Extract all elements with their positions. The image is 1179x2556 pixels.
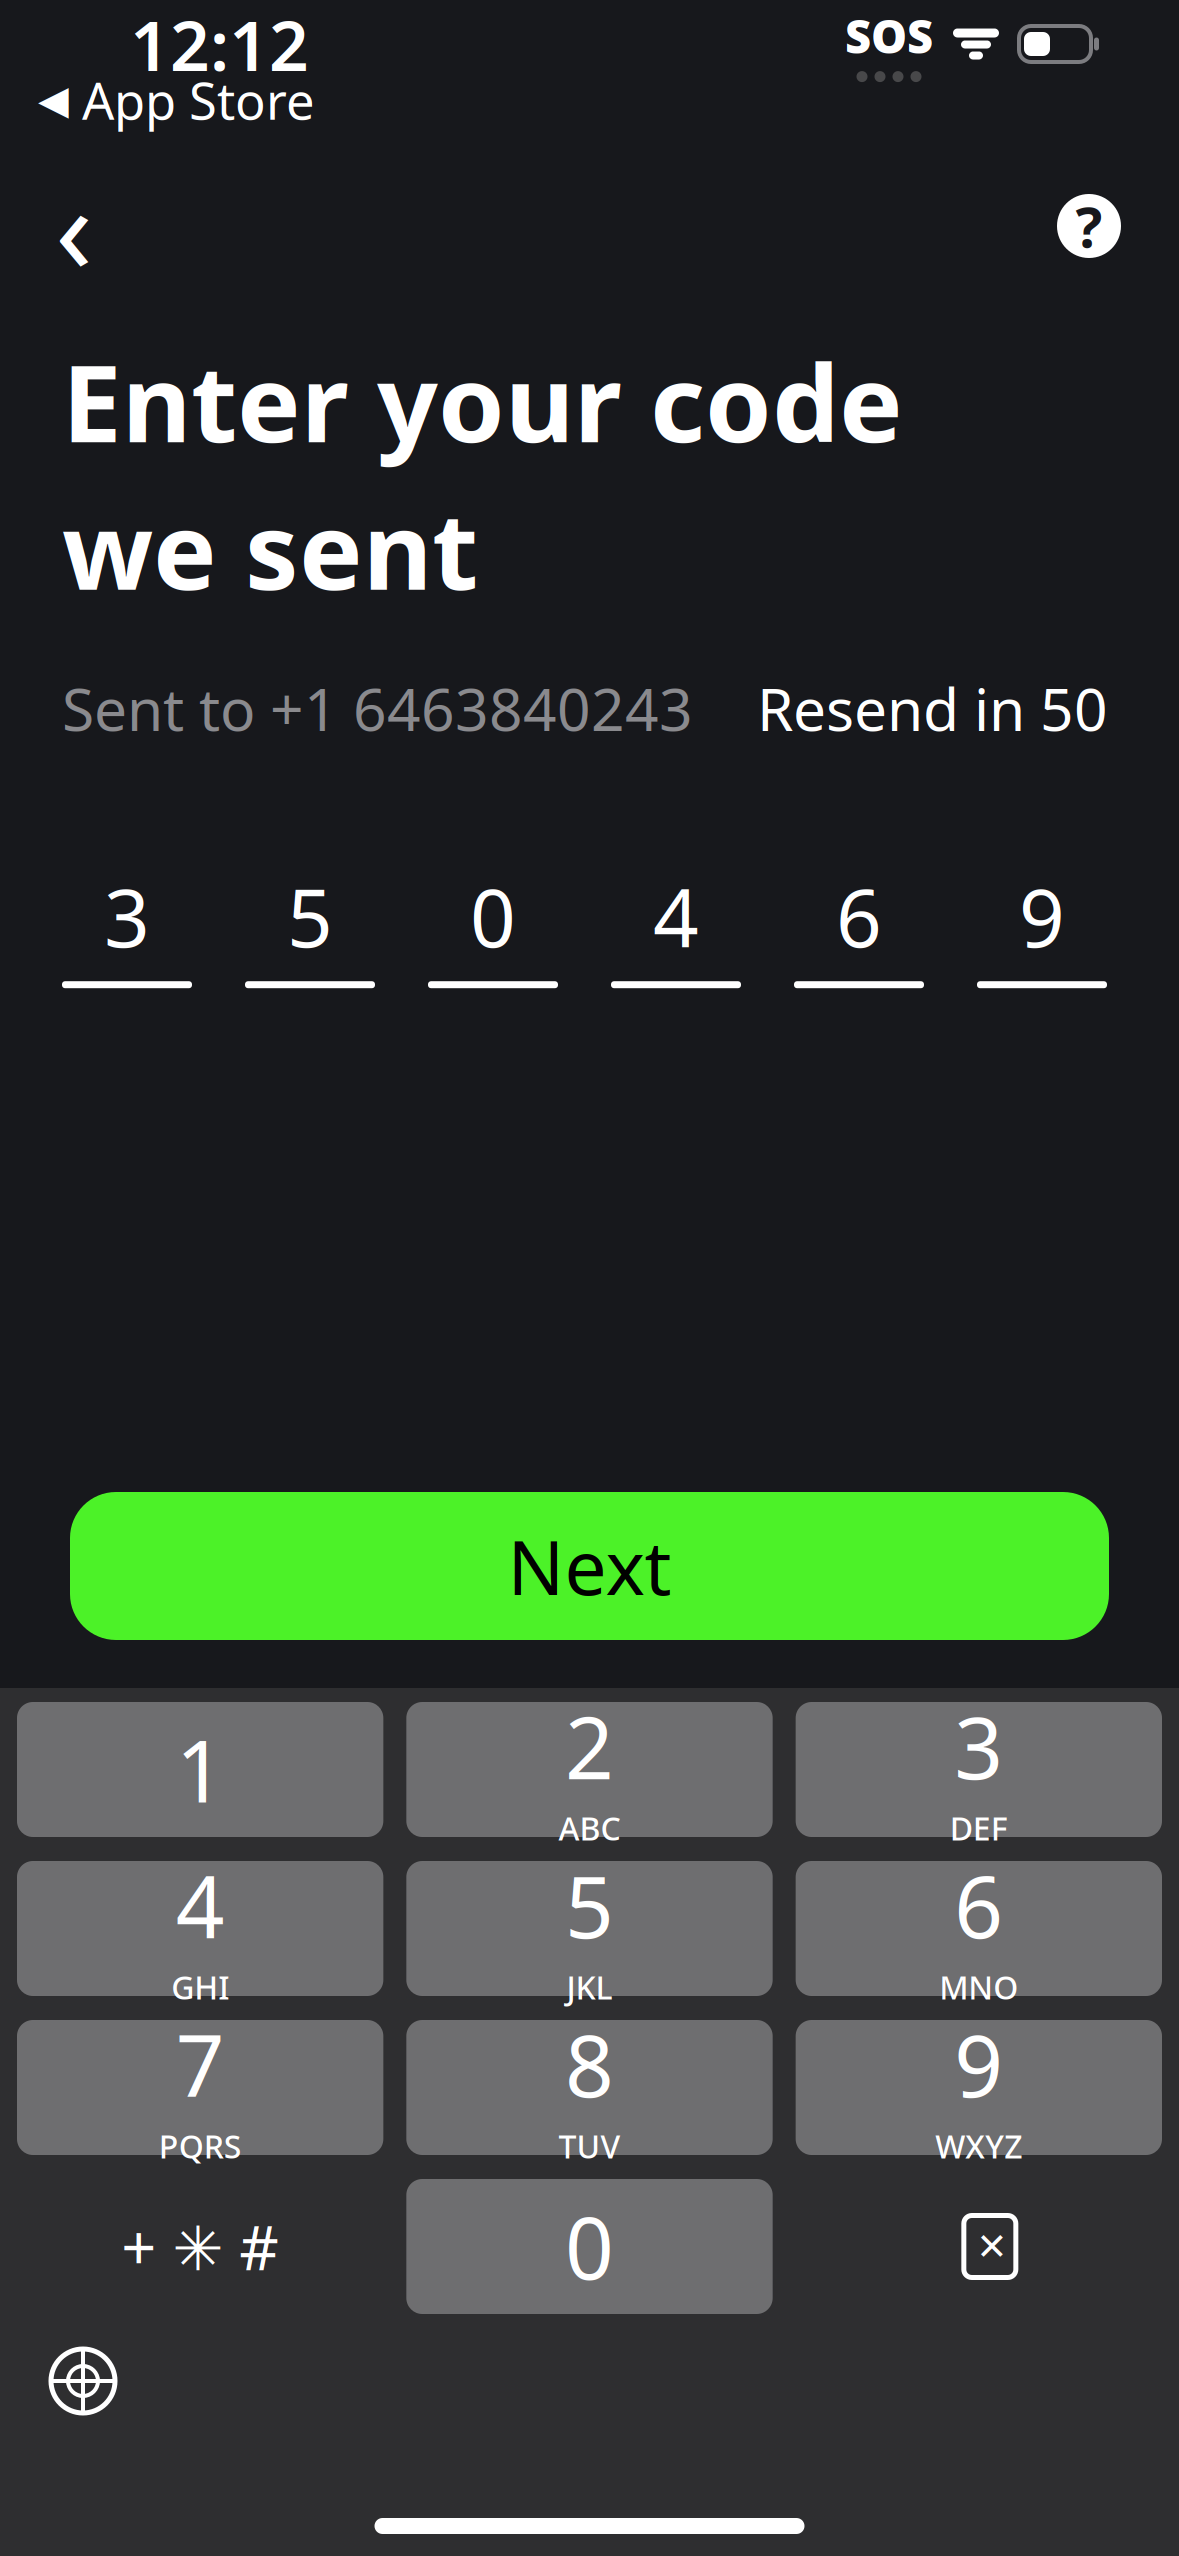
button[interactable]: Symbols (17, 2179, 383, 2314)
staticText: ‹ (55, 145, 93, 307)
staticText: Enter your code (62, 330, 903, 472)
staticText: 7 (176, 2008, 225, 2121)
staticText: 8 (565, 2008, 614, 2121)
button[interactable]: Back (26, 178, 122, 274)
staticText: 2 (565, 1690, 614, 1803)
button[interactable]: 7 (17, 2020, 383, 2155)
button[interactable]: 6 (794, 877, 924, 988)
staticText: MNO (939, 1966, 1018, 2008)
staticText: 4 (653, 863, 699, 969)
button[interactable]: 5 (245, 877, 375, 988)
staticText: TUV (558, 2125, 620, 2167)
button[interactable]: Change keyboard (38, 2336, 128, 2426)
button[interactable]: 4 (611, 877, 741, 988)
button[interactable]: 0 (406, 2179, 773, 2314)
button[interactable]: 9 (796, 2020, 1162, 2155)
button[interactable]: 3 (62, 877, 192, 988)
staticText: 12:12 (130, 0, 309, 90)
button[interactable]: Delete (796, 2179, 1162, 2314)
staticText: + ✳ # (121, 2206, 279, 2287)
staticText: JKL (566, 1966, 612, 2008)
staticText: 9 (1019, 863, 1065, 969)
button[interactable]: Help (1041, 178, 1137, 274)
staticText: App Store (69, 66, 315, 134)
staticText: PQRS (159, 2125, 242, 2167)
staticText: GHI (171, 1966, 229, 2008)
staticText: 9 (954, 2008, 1003, 2121)
staticText: 1 (176, 1713, 225, 1826)
button[interactable]: 9 (977, 877, 1107, 988)
button[interactable]: 5 (406, 1861, 773, 1996)
staticText: 0 (565, 2190, 614, 2303)
staticText: 3 (954, 1690, 1003, 1803)
staticText: 5 (565, 1849, 614, 1962)
staticText: 4 (176, 1849, 225, 1962)
button[interactable]: Next (70, 1492, 1109, 1640)
staticText: we sent (62, 478, 478, 619)
staticText: Next (507, 1516, 671, 1616)
staticText: ? (1075, 189, 1102, 263)
staticText: ✕ (976, 2225, 1007, 2268)
staticText: SOS (845, 6, 933, 66)
button[interactable]: 3 (796, 1702, 1162, 1837)
staticText: 3 (104, 863, 150, 969)
staticText: 0 (470, 863, 516, 969)
staticText: 6 (954, 1849, 1003, 1962)
button[interactable]: 6 (796, 1861, 1162, 1996)
staticText: WXYZ (935, 2125, 1022, 2167)
staticText: ABC (558, 1807, 620, 1849)
button[interactable]: Resend in 50 (757, 669, 1108, 747)
staticText: Sent to +1 6463840243 (62, 669, 693, 747)
button[interactable]: 1 (17, 1702, 383, 1837)
button[interactable]: 2 (406, 1702, 773, 1837)
button[interactable]: 0 (428, 877, 558, 988)
staticText: Resend in 50 (757, 669, 1108, 747)
button[interactable]: 4 (17, 1861, 383, 1996)
staticText: 5 (287, 863, 333, 969)
button[interactable]: 8 (406, 2020, 773, 2155)
staticText: 6 (836, 863, 882, 969)
staticText: ◀ (38, 77, 69, 123)
staticText: DEF (950, 1807, 1008, 1849)
